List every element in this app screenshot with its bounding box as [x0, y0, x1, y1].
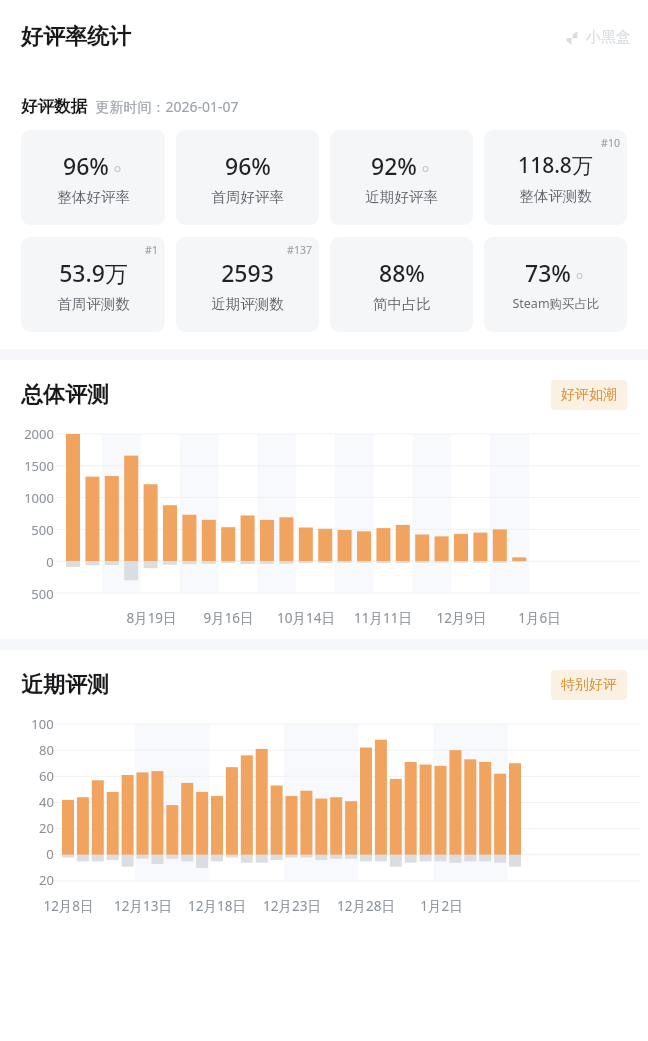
staticText: 整体评测数 — [519, 187, 592, 205]
button[interactable]: 73% — [484, 237, 627, 332]
staticText: 首周评测数 — [57, 295, 130, 313]
staticText: 首周好评率 — [211, 188, 284, 206]
staticText: 总体评测 — [21, 381, 109, 409]
staticText: 8月19日 — [126, 609, 177, 627]
staticText: 1月2日 — [420, 897, 463, 915]
staticText: 好评如潮 — [561, 386, 617, 404]
staticText: 12月8日 — [43, 897, 94, 915]
staticText: 2593 — [221, 257, 274, 288]
staticText: 118.8万 — [518, 151, 593, 180]
staticText: 更新时间：2026-01-07 — [95, 97, 239, 116]
staticText: 12月9日 — [436, 609, 487, 627]
staticText: 96% — [63, 150, 109, 181]
staticText: 1000 — [24, 489, 54, 507]
staticText: 1500 — [24, 457, 54, 475]
staticText: 500 — [31, 585, 54, 603]
staticText: 好评数据 — [21, 96, 87, 117]
staticText: 11月11日 — [354, 609, 412, 627]
staticText: 10月14日 — [277, 609, 335, 627]
staticText: 12月13日 — [114, 897, 172, 915]
staticText: 88% — [379, 257, 425, 288]
staticText: 12月23日 — [263, 897, 321, 915]
staticText: 9月16日 — [203, 609, 254, 627]
staticText: 60 — [39, 767, 54, 785]
staticText: 53.9万 — [59, 257, 128, 288]
staticText: 40 — [39, 793, 54, 811]
button[interactable]: 88% — [330, 237, 473, 332]
button[interactable]: 118.8万 — [484, 130, 627, 225]
staticText: 12月28日 — [337, 897, 395, 915]
staticText: 好评率统计 — [21, 23, 131, 51]
button[interactable]: 96% — [21, 130, 165, 225]
button[interactable]: 96% — [176, 130, 319, 225]
staticText: 特别好评 — [561, 676, 617, 694]
staticText: #1 — [145, 243, 158, 257]
staticText: Steam购买占比 — [512, 295, 600, 312]
staticText: 12月18日 — [188, 897, 246, 915]
staticText: 近期好评率 — [365, 188, 438, 206]
staticText: 100 — [31, 715, 54, 733]
staticText: 73% — [525, 257, 571, 288]
staticText: 近期评测数 — [211, 295, 284, 313]
staticText: 96% — [225, 150, 271, 181]
staticText: 20 — [39, 819, 54, 837]
staticText: 近期评测 — [21, 671, 109, 699]
staticText: 2000 — [24, 425, 54, 443]
staticText: 整体好评率 — [57, 188, 130, 206]
button[interactable]: 小黑盒 品牌标识 — [563, 28, 631, 47]
staticText: 92% — [371, 150, 417, 181]
button[interactable]: 特别好评 — [551, 670, 627, 700]
button[interactable]: 92% — [330, 130, 473, 225]
staticText: 20 — [39, 871, 54, 889]
button[interactable]: 53.9万 — [21, 237, 165, 332]
staticText: 小黑盒 — [586, 28, 631, 47]
staticText: 0 — [46, 553, 54, 571]
button[interactable]: 好评如潮 — [551, 380, 627, 410]
staticText: 500 — [31, 521, 54, 539]
staticText: 0 — [46, 845, 54, 863]
staticText: 80 — [39, 741, 54, 759]
button[interactable]: 2593 — [176, 237, 319, 332]
staticText: #10 — [601, 136, 620, 150]
staticText: 1月6日 — [518, 609, 561, 627]
staticText: #137 — [287, 243, 312, 257]
staticText: 简中占比 — [373, 295, 431, 313]
